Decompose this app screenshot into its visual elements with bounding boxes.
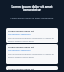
staticText: Consectetur adipiscing <box>8 33 31 36</box>
staticText: Sed do eiusmod tempor incididunt ut labo… <box>8 53 56 58</box>
staticText: Lorem ipsum dolor sit <box>8 29 35 32</box>
staticText: Lorem ipsum dolor sit amet consectetur <box>4 5 60 12</box>
staticText: Consectetur adipiscing <box>8 49 31 52</box>
staticText: Lorem ipsum dolor sit <box>8 67 35 70</box>
button[interactable]: Lorem ipsum dolor sit <box>6 44 58 64</box>
button[interactable]: Lorem ipsum dolor sit <box>6 66 58 70</box>
staticText: Lorem ipsum dolor sit amet consectetur <box>6 17 58 20</box>
button[interactable]: Lorem ipsum dolor sit <box>6 28 58 43</box>
staticText: Sed do eiusmod tempor incididunt ut labo… <box>8 37 56 42</box>
staticText: Lorem ipsum dolor sit <box>8 45 35 48</box>
